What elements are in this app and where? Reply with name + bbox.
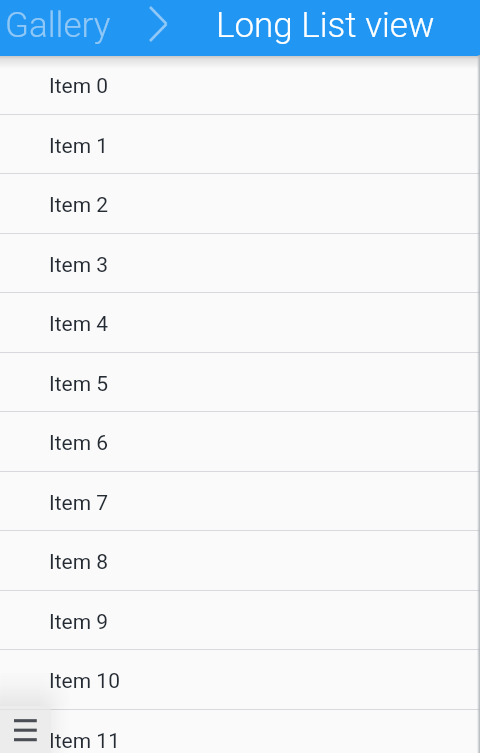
staticText: Item 4 [49,312,109,337]
button[interactable]: Item 7 [0,472,480,532]
staticText: Item 1 [49,134,109,159]
staticText: Item 11 [49,729,120,753]
staticText: Item 8 [49,550,109,575]
staticText: Long List view [216,5,435,46]
button[interactable]: Item 10 [0,650,480,710]
staticText: Item 5 [49,372,109,397]
staticText: Item 2 [49,193,109,218]
staticText: Item 3 [49,253,109,278]
staticText: Item 6 [49,431,109,456]
button[interactable]: Item 3 [0,234,480,294]
button[interactable]: Item 11 [0,710,480,753]
button[interactable]: Gallery [0,0,180,56]
button[interactable]: Item 5 [0,353,480,413]
button[interactable]: Item 9 [0,591,480,651]
button[interactable]: Item 4 [0,293,480,353]
staticText: Item 9 [49,610,109,635]
button[interactable]: Menu [0,706,51,753]
button[interactable]: Item 1 [0,115,480,175]
staticText: Gallery [5,5,111,46]
staticText: Item 10 [49,669,120,694]
staticText: Item 7 [49,491,109,516]
staticText: Item 0 [49,74,109,99]
button[interactable]: Item 0 [0,55,480,115]
button[interactable]: Item 8 [0,531,480,591]
button[interactable]: Item 2 [0,174,480,234]
button[interactable]: Item 6 [0,412,480,472]
